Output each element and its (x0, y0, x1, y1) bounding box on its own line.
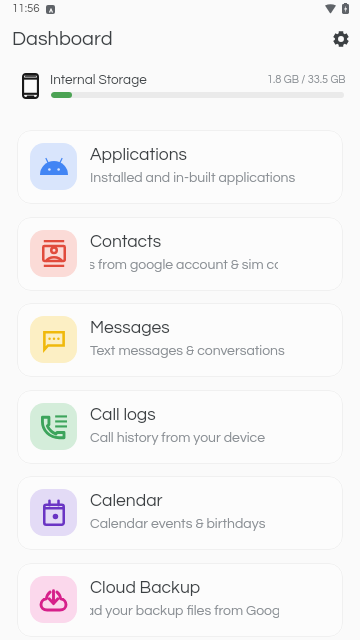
staticText: Download your backup files from Google D… (90, 604, 279, 618)
button[interactable]: Call logs (17, 390, 343, 464)
button[interactable]: Cloud Backup (17, 563, 343, 637)
staticText: 11:56 (12, 3, 40, 15)
button[interactable]: Applications (17, 130, 343, 204)
button[interactable]: Calendar (17, 476, 343, 550)
staticText: Dashboard (12, 29, 113, 50)
button[interactable]: Messages (17, 303, 343, 377)
staticText: Applications (90, 146, 188, 164)
staticText: Cloud Backup (90, 579, 201, 597)
staticText: Installed and in-built applications (90, 171, 296, 185)
staticText: Calendar (90, 492, 163, 510)
button[interactable]: Contacts (17, 217, 343, 291)
button[interactable]: Settings (326, 24, 356, 54)
staticText: Internal Storage (50, 73, 147, 87)
staticText: Contacts from google account & sim cards (90, 258, 278, 272)
staticText: Text messages & conversations (90, 344, 285, 358)
staticText: Calendar events & birthdays (90, 517, 266, 531)
staticText: Call logs (90, 406, 156, 424)
staticText: Call history from your device (90, 431, 266, 445)
staticText: Contacts (90, 233, 162, 251)
staticText: Messages (90, 319, 170, 337)
staticText: 1.8 GB / 33.5 GB (267, 74, 346, 85)
